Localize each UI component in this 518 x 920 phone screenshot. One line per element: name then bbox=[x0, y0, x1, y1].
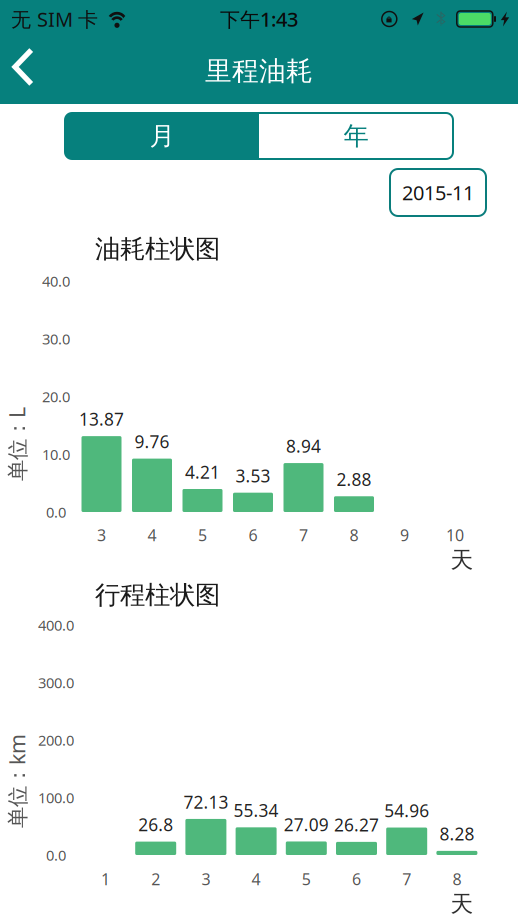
staticText: 72.13 bbox=[183, 790, 228, 813]
staticText: 油耗柱状图 bbox=[95, 233, 220, 264]
staticText: 30.0 bbox=[42, 329, 70, 348]
staticText: 8.28 bbox=[439, 822, 474, 845]
staticText: 下午1:43 bbox=[220, 6, 298, 32]
staticText: 40.0 bbox=[42, 271, 70, 291]
staticText: 13.87 bbox=[79, 408, 124, 431]
staticText: 400.0 bbox=[38, 615, 74, 635]
button[interactable]: 年 bbox=[259, 113, 453, 159]
staticText: 6 bbox=[352, 868, 361, 890]
staticText: 300.0 bbox=[38, 673, 74, 692]
staticText: 27.09 bbox=[284, 813, 329, 836]
staticText: 54.96 bbox=[384, 799, 429, 822]
staticText: 20.0 bbox=[42, 387, 70, 406]
staticText: 5 bbox=[302, 868, 311, 890]
staticText: 单位：L bbox=[0, 430, 54, 458]
staticText: 7 bbox=[299, 524, 308, 546]
staticText: 26.27 bbox=[334, 813, 379, 836]
staticText: 100.0 bbox=[38, 788, 74, 807]
staticText: 3 bbox=[97, 524, 106, 546]
staticText: 4.21 bbox=[185, 460, 220, 483]
staticText: 无 SIM 卡 bbox=[11, 6, 98, 32]
staticText: 1 bbox=[101, 868, 110, 890]
staticText: 天 bbox=[450, 890, 473, 918]
staticText: 3.53 bbox=[235, 464, 270, 487]
staticText: 里程油耗 bbox=[205, 55, 313, 87]
staticText: 10 bbox=[446, 524, 464, 546]
staticText: 10.0 bbox=[42, 444, 70, 464]
staticText: 55.34 bbox=[234, 799, 279, 822]
staticText: 2015-11 bbox=[402, 179, 474, 206]
button[interactable]: Back bbox=[0, 38, 46, 104]
staticText: 4 bbox=[147, 524, 156, 546]
staticText: 月 bbox=[149, 120, 174, 151]
staticText: 单位：km bbox=[0, 767, 64, 795]
staticText: 3 bbox=[201, 868, 210, 890]
staticText: 26.8 bbox=[138, 813, 173, 836]
staticText: 5 bbox=[198, 524, 207, 546]
button[interactable]: 2015-11 bbox=[390, 169, 486, 216]
staticText: 200.0 bbox=[38, 730, 74, 750]
staticText: 8 bbox=[349, 524, 358, 546]
staticText: 0.0 bbox=[46, 845, 66, 865]
staticText: 8.94 bbox=[286, 435, 321, 458]
staticText: 2.88 bbox=[336, 468, 371, 491]
button[interactable]: 月 bbox=[65, 113, 259, 159]
staticText: 2 bbox=[151, 868, 160, 890]
staticText: 8 bbox=[452, 868, 461, 890]
staticText: 9 bbox=[400, 524, 409, 546]
staticText: 0.0 bbox=[46, 502, 66, 522]
staticText: 行程柱状图 bbox=[95, 579, 220, 610]
staticText: 天 bbox=[450, 546, 473, 574]
staticText: 6 bbox=[248, 524, 257, 546]
staticText: 9.76 bbox=[134, 430, 169, 453]
staticText: 4 bbox=[252, 868, 261, 890]
staticText: 7 bbox=[402, 868, 411, 890]
staticText: 年 bbox=[343, 120, 368, 151]
